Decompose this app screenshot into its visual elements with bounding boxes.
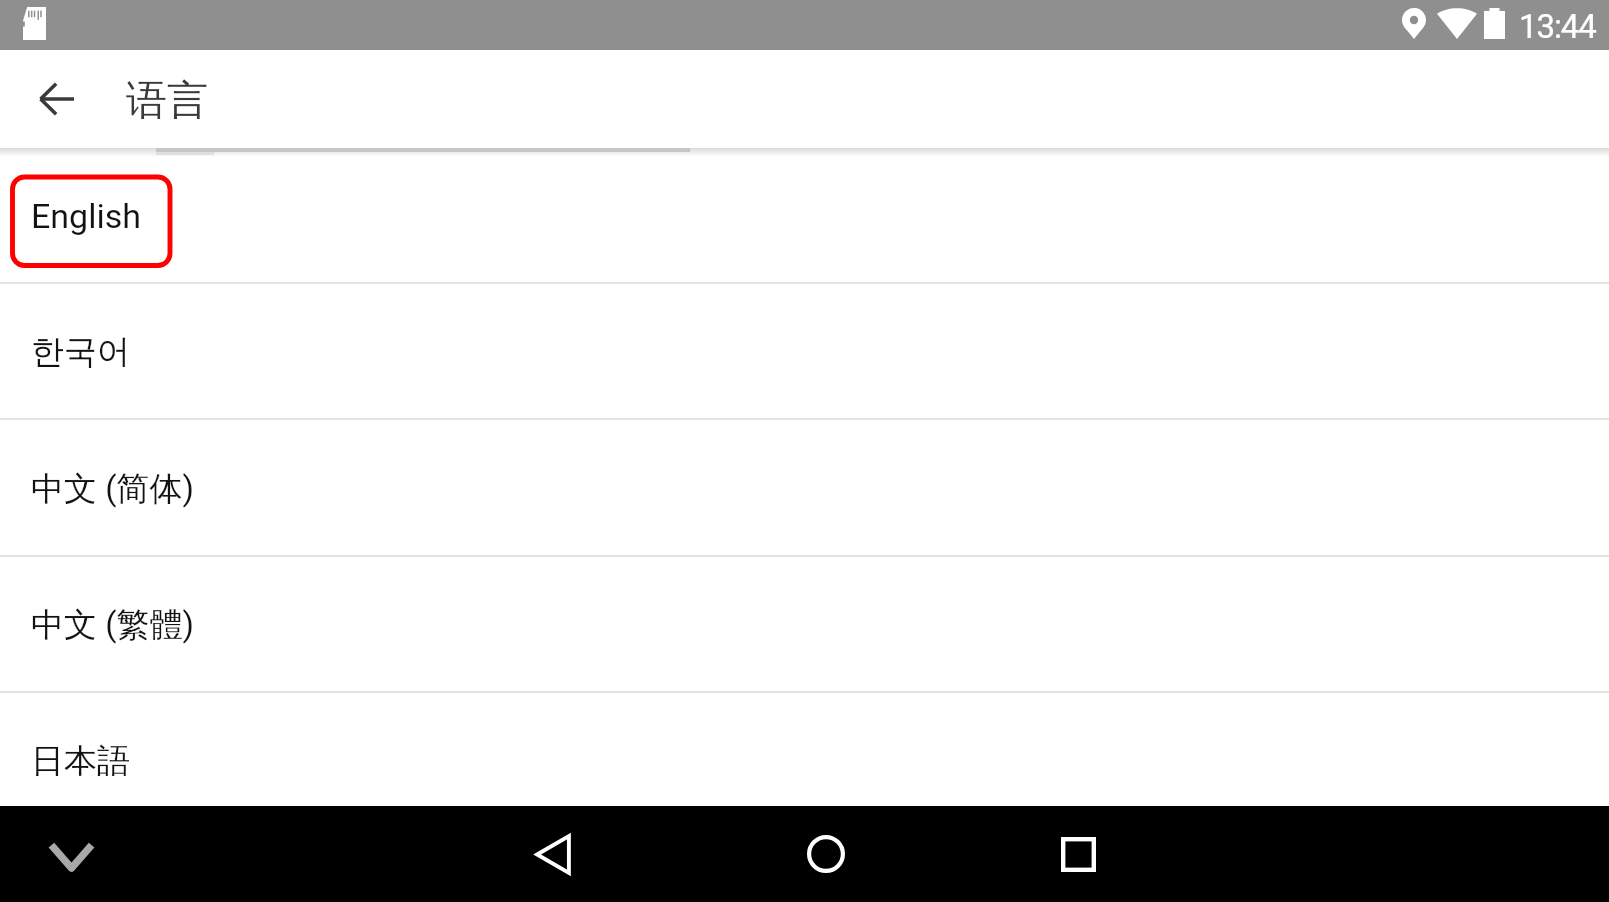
- button[interactable]: Back: [505, 806, 601, 902]
- button[interactable]: Recent apps: [1030, 806, 1126, 902]
- button[interactable]: Back: [8, 50, 105, 147]
- button[interactable]: 中文 (简体): [0, 421, 1609, 557]
- staticText: English: [31, 196, 142, 236]
- button[interactable]: English: [0, 148, 1609, 284]
- button[interactable]: 한국어: [0, 284, 1609, 420]
- staticText: 中文 (简体): [31, 468, 194, 510]
- staticText: 语言: [126, 75, 208, 127]
- button[interactable]: 日本語: [0, 693, 1609, 806]
- staticText: 日本語: [31, 740, 130, 782]
- button[interactable]: Home: [778, 806, 874, 902]
- staticText: 中文 (繁體): [31, 604, 194, 646]
- button[interactable]: 中文 (繁體): [0, 557, 1609, 693]
- staticText: 13:44: [1519, 7, 1596, 46]
- button[interactable]: Hide keyboard: [28, 815, 114, 901]
- staticText: 한국어: [31, 331, 130, 373]
